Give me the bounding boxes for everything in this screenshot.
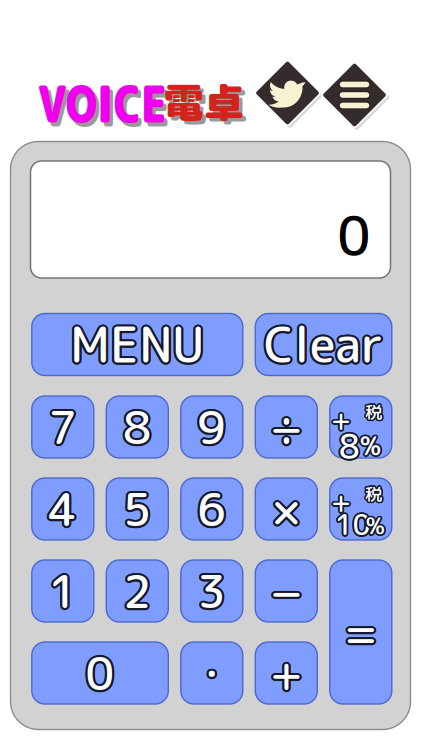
staticText: % xyxy=(361,429,382,464)
button[interactable]: + xyxy=(330,396,392,458)
button[interactable]: 7 xyxy=(32,396,94,458)
staticText: 1 xyxy=(50,559,79,623)
staticText: ÷ xyxy=(269,397,302,460)
staticText: ÷ xyxy=(268,397,301,460)
staticText: 9 xyxy=(197,393,226,456)
staticText: MENU xyxy=(69,313,203,380)
staticText: = xyxy=(344,598,378,661)
button[interactable]: Menu xyxy=(321,62,387,128)
staticText: VOICE xyxy=(42,72,197,143)
staticText: 1 xyxy=(50,560,79,623)
staticText: + xyxy=(329,400,350,439)
staticText: Clear xyxy=(262,310,381,377)
staticText: 1 xyxy=(49,561,78,624)
staticText: % xyxy=(367,510,386,542)
button[interactable]: ・ xyxy=(181,642,243,704)
staticText: 8 xyxy=(340,423,361,469)
staticText: 9 xyxy=(198,393,227,457)
staticText: = xyxy=(345,602,379,665)
staticText: 4 xyxy=(49,475,78,539)
staticText: + xyxy=(330,483,351,522)
staticText: 税 xyxy=(365,401,382,426)
staticText: 2 xyxy=(123,561,152,625)
button[interactable]: 4 xyxy=(32,478,94,540)
staticText: × xyxy=(272,476,298,539)
staticText: ÷ xyxy=(272,395,305,459)
staticText: 8 xyxy=(338,424,359,471)
staticText: 10 xyxy=(335,505,371,544)
staticText: + xyxy=(331,480,352,519)
staticText: MENU xyxy=(72,311,206,378)
staticText: Clear xyxy=(266,310,385,377)
staticText: % xyxy=(361,427,382,462)
staticText: 10 xyxy=(335,503,371,542)
button[interactable]: 1 xyxy=(32,560,94,622)
staticText: 税 xyxy=(364,483,381,508)
button[interactable]: Clear xyxy=(255,313,392,375)
staticText: 3 xyxy=(197,561,226,625)
staticText: − xyxy=(272,560,305,623)
button[interactable]: 3 xyxy=(181,560,243,622)
staticText: 9 xyxy=(198,397,227,460)
staticText: + xyxy=(268,641,301,705)
staticText: 7 xyxy=(48,395,77,459)
staticText: + xyxy=(331,402,352,441)
staticText: × xyxy=(274,479,300,542)
staticText: ・ xyxy=(193,644,233,699)
button[interactable]: 0 xyxy=(32,642,168,704)
staticText: 8 xyxy=(124,393,153,457)
staticText: 税 xyxy=(363,482,380,506)
staticText: 10 xyxy=(334,504,370,543)
button[interactable]: × xyxy=(255,478,317,540)
staticText: % xyxy=(360,429,381,465)
staticText: 5 xyxy=(123,475,152,538)
staticText: MENU xyxy=(69,309,203,376)
staticText: 5 xyxy=(124,479,153,542)
staticText: 6 xyxy=(199,476,228,539)
staticText: × xyxy=(275,477,301,540)
staticText: 7 xyxy=(47,397,76,460)
staticText: 2 xyxy=(122,561,151,624)
button[interactable]: 9 xyxy=(181,396,243,458)
staticText: 8 xyxy=(338,421,359,468)
staticText: 税 xyxy=(363,481,380,506)
staticText: × xyxy=(273,479,299,543)
staticText: 9 xyxy=(199,397,228,460)
staticText: 電卓 xyxy=(167,77,247,133)
staticText: × xyxy=(271,477,297,540)
staticText: % xyxy=(358,429,379,464)
staticText: 3 xyxy=(197,557,226,620)
staticText: MENU xyxy=(72,312,206,379)
staticText: Clear xyxy=(266,311,385,378)
staticText: 5 xyxy=(125,477,154,540)
button[interactable]: 8 xyxy=(106,396,168,458)
button[interactable]: MENU xyxy=(32,313,243,375)
staticText: × xyxy=(275,476,301,539)
button[interactable]: + xyxy=(330,478,392,540)
button[interactable]: 2 xyxy=(106,560,168,622)
staticText: 税 xyxy=(363,401,380,425)
staticText: = xyxy=(343,598,377,662)
button[interactable]: − xyxy=(255,560,317,622)
button[interactable]: + xyxy=(255,642,317,704)
staticText: ・ xyxy=(194,645,234,701)
button[interactable]: ÷ xyxy=(255,396,317,458)
staticText: + xyxy=(332,400,353,439)
staticText: 7 xyxy=(48,397,77,461)
button[interactable]: 5 xyxy=(106,478,168,540)
staticText: 2 xyxy=(124,558,153,621)
staticText: + xyxy=(272,641,305,704)
button[interactable]: = xyxy=(330,560,392,704)
staticText: 税 xyxy=(365,399,382,423)
staticText: % xyxy=(366,510,385,542)
button[interactable]: Twitter xyxy=(254,60,320,126)
staticText: 1 xyxy=(50,561,79,624)
staticText: 2 xyxy=(122,557,151,621)
staticText: 6 xyxy=(197,477,226,541)
staticText: 6 xyxy=(195,477,224,540)
staticText: ÷ xyxy=(270,397,303,461)
staticText: + xyxy=(329,483,350,522)
staticText: % xyxy=(367,509,386,540)
button[interactable]: 6 xyxy=(181,478,243,540)
staticText: 3 xyxy=(195,559,224,623)
